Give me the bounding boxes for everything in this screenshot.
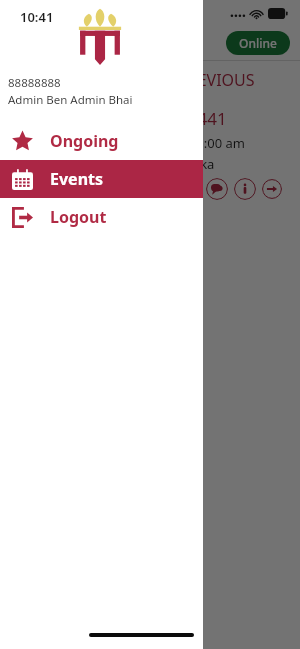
other: Logout — [12, 207, 33, 228]
button[interactable]: Info — [234, 178, 256, 200]
staticText: Online — [239, 35, 277, 51]
staticText: Logout — [50, 206, 107, 228]
staticText: Admin Ben Admin Bhai — [8, 92, 133, 108]
button[interactable]: Open — [262, 178, 282, 200]
other: Events — [12, 169, 33, 190]
button[interactable]: 11441 — [170, 99, 290, 208]
staticText: 10:41 — [20, 8, 54, 26]
staticText: 11441 — [178, 107, 227, 130]
staticText: 7:00:00 am — [178, 134, 245, 152]
staticText: Lanka — [178, 155, 215, 173]
button[interactable]: Ongoing — [0, 122, 203, 160]
other: Open — [266, 183, 278, 195]
other: Ongoing — [12, 131, 33, 152]
other: Info — [239, 183, 251, 195]
staticText: 88888888 — [8, 75, 61, 91]
button[interactable]: Online — [226, 31, 290, 55]
staticText: PREVIOUS — [178, 69, 255, 91]
other: Chat — [211, 183, 223, 195]
staticText: Events — [50, 168, 104, 190]
button[interactable]: Logout — [0, 198, 203, 236]
button[interactable]: Events — [0, 160, 203, 198]
staticText: Ongoing — [50, 130, 119, 152]
button[interactable]: Add — [178, 178, 200, 200]
button[interactable]: Chat — [206, 178, 228, 200]
